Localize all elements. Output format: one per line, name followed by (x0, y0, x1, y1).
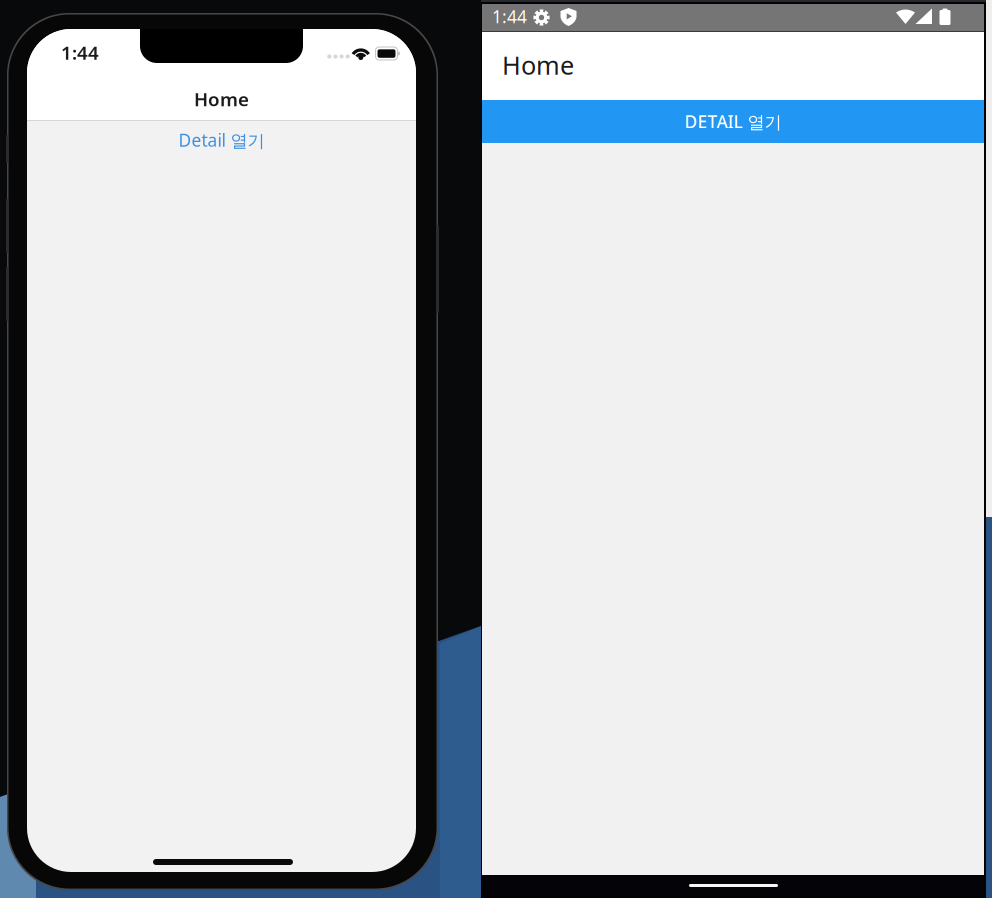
staticText: Home (502, 48, 574, 82)
button[interactable]: Detail 열기 (27, 125, 416, 155)
staticText: Detail 열기 (178, 128, 264, 151)
staticText: 1:44 (61, 40, 99, 65)
button[interactable]: DETAIL 열기 (482, 100, 984, 143)
staticText: DETAIL 열기 (684, 110, 781, 133)
staticText: 1:44 (492, 5, 527, 28)
staticText: Home (194, 87, 249, 111)
